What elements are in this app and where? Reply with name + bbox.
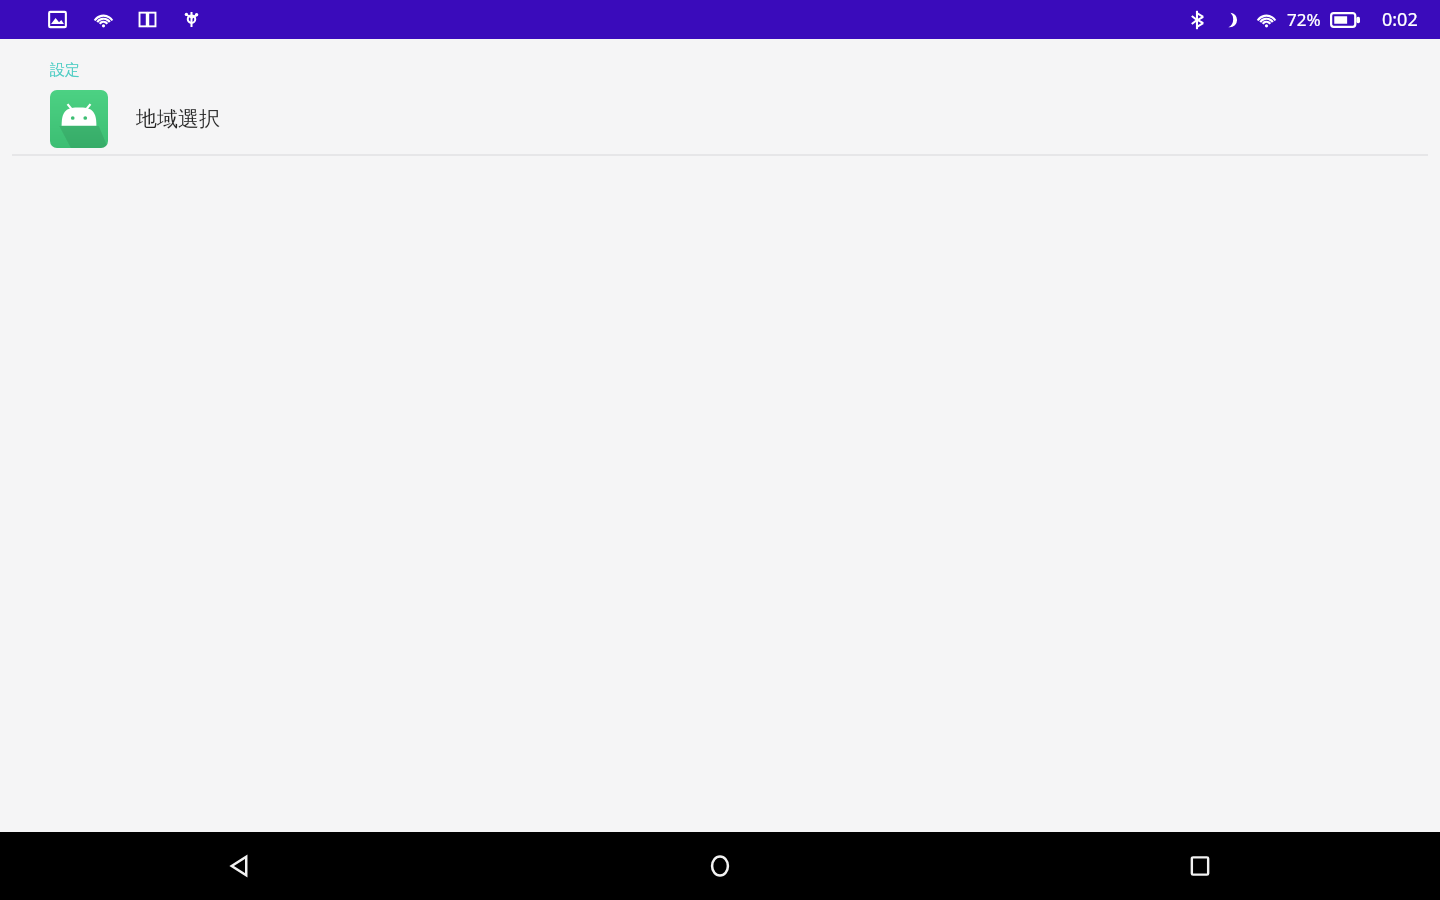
staticText: 設定	[50, 61, 80, 80]
button[interactable]: Home	[480, 832, 960, 900]
button[interactable]: 地域選択	[0, 84, 1440, 154]
button[interactable]: Recent apps	[960, 832, 1440, 900]
staticText: 72%	[1287, 8, 1321, 31]
staticText: 地域選択	[136, 106, 220, 132]
staticText: 0:02	[1382, 7, 1418, 32]
button[interactable]: Back	[0, 832, 480, 900]
